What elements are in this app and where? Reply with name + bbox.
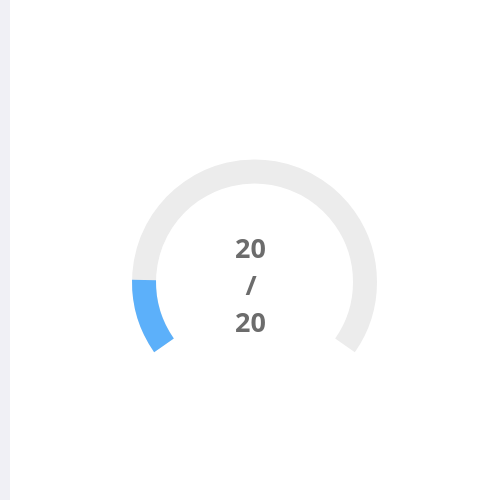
staticText: 20 <box>235 303 266 340</box>
staticText: 20 <box>235 229 266 266</box>
staticText: / <box>245 266 257 303</box>
button[interactable]: Daily goal gauge, 20 of 20 <box>0 0 500 500</box>
